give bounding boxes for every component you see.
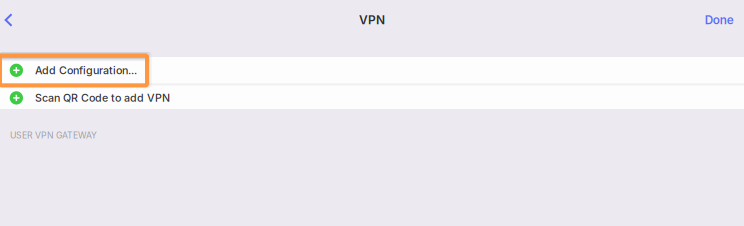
- staticText: USER VPN GATEWAY: [10, 130, 97, 140]
- button[interactable]: Back: [0, 0, 24, 40]
- staticText: Scan QR Code to add VPN: [35, 91, 170, 104]
- staticText: Add Configuration...: [35, 64, 137, 77]
- button[interactable]: Scan QR Code to add VPN: [0, 85, 744, 109]
- button[interactable]: Done: [705, 0, 744, 40]
- button[interactable]: Add Configuration...: [0, 57, 744, 84]
- staticText: Done: [705, 13, 734, 27]
- staticText: VPN: [359, 13, 385, 27]
